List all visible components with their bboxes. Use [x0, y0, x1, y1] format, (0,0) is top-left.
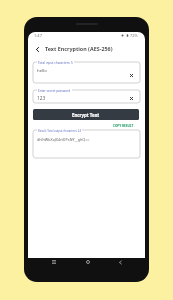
staticText: Text Encryption (AES-256): [45, 45, 113, 52]
staticText: 123: [37, 95, 46, 102]
staticText: COPY RESULT: [113, 124, 134, 128]
staticText: hello: [37, 67, 47, 73]
staticText: 1:47: [34, 33, 42, 38]
button[interactable]: Clear text: [127, 71, 136, 80]
button[interactable]: Home: [82, 256, 94, 268]
button[interactable]: Back: [33, 45, 42, 54]
button[interactable]: Encrypt Text: [33, 109, 139, 120]
staticText: Result: Total output characters: 24: [38, 129, 81, 133]
button[interactable]: Recent apps: [48, 256, 60, 268]
button[interactable]: Clear text: [127, 94, 136, 103]
staticText: 72%: [130, 33, 138, 38]
staticText: dhlhWbXoJX4nl0PxNY__ghQ==: [37, 137, 90, 142]
staticText: Enter secret password: [38, 89, 71, 93]
staticText: Encrypt Text: [72, 112, 100, 118]
button[interactable]: COPY RESULT: [109, 122, 137, 129]
staticText: Total input characters: 5: [38, 61, 73, 65]
button[interactable]: Back: [114, 256, 126, 268]
